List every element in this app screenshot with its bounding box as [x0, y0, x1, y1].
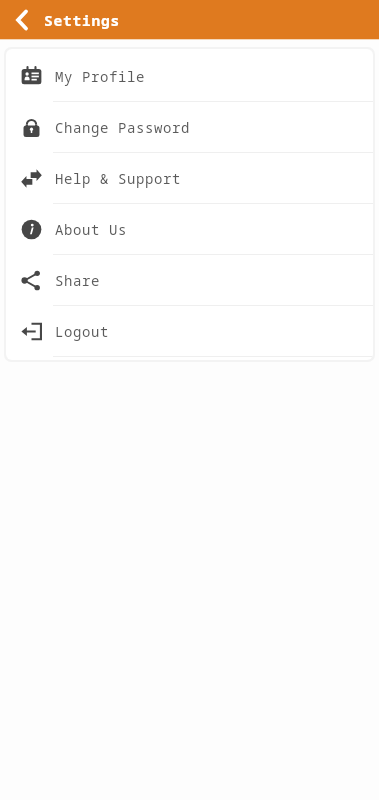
staticText: Settings	[44, 10, 120, 30]
button[interactable]: Change Password	[6, 102, 373, 153]
staticText: Share	[55, 271, 100, 290]
button[interactable]: Share	[6, 255, 373, 306]
button[interactable]: Back	[6, 4, 38, 36]
staticText: Help & Support	[55, 169, 181, 188]
staticText: My Profile	[55, 67, 145, 86]
staticText: Change Password	[55, 118, 190, 137]
button[interactable]: Help & Support	[6, 153, 373, 204]
button[interactable]: About Us	[6, 204, 373, 255]
button[interactable]: Logout	[6, 306, 373, 357]
staticText: Logout	[55, 322, 109, 341]
staticText: About Us	[55, 220, 127, 239]
button[interactable]: My Profile	[6, 51, 373, 102]
